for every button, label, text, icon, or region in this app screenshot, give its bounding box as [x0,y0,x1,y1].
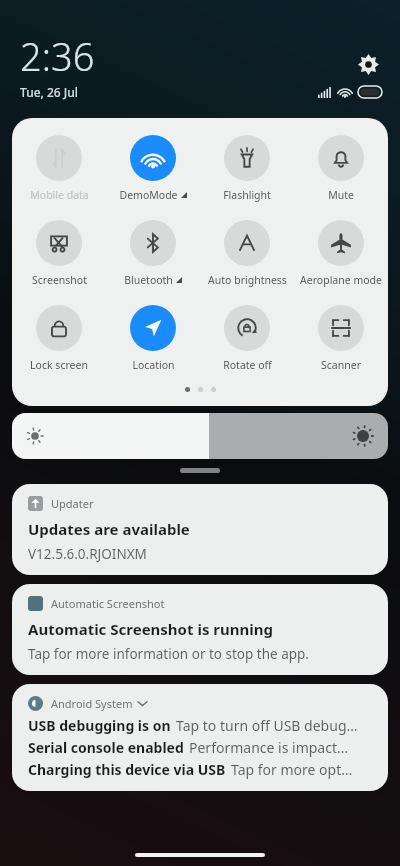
staticText: Location [132,358,175,372]
button[interactable]: Location [106,302,200,375]
staticText: V12.5.6.0.RJOINXM [28,545,147,563]
staticText: Mobile data [30,188,89,202]
button[interactable]: Screenshot [12,217,106,290]
staticText: USB debugging is on [28,716,171,735]
button[interactable]: Mobile data [12,132,106,205]
staticText: Tap for more opt… [231,760,353,779]
button[interactable]: Aeroplane mode [294,217,388,290]
staticText: DemoMode [119,188,178,202]
staticText: Updates are available [28,519,190,539]
button[interactable]: Mute [294,132,388,205]
button[interactable]: Auto brightness [200,217,294,290]
staticText: Tap for more information or to stop the … [28,645,309,663]
staticText: Lock screen [30,358,88,372]
button[interactable]: Lock screen [12,302,106,375]
staticText: Automatic Screenshot [51,596,165,611]
staticText: 2:36 [20,30,95,82]
staticText: Screenshot [32,273,87,287]
staticText: Mute [328,188,354,202]
button[interactable]: Updater [12,484,388,575]
staticText: Tue, 26 Jul [20,84,79,100]
staticText: Bluetooth [124,273,173,287]
button[interactable]: Automatic Screenshot [12,584,388,675]
button[interactable]: Android System [12,684,388,791]
staticText: Aeroplane mode [300,273,382,287]
staticText: Serial console enabled [28,738,184,757]
staticText: Rotate off [223,358,272,372]
button[interactable]: Rotate off [200,302,294,375]
staticText: Tap to turn off USB debug… [176,716,358,735]
staticText: Charging this device via USB [28,760,226,779]
button[interactable]: DemoMode [106,132,200,205]
staticText: Android System [51,696,133,711]
button[interactable]: Flashlight [200,132,294,205]
button[interactable]: Settings [354,50,382,78]
staticText: Performance is impact… [189,738,349,757]
button[interactable]: Brightness [12,413,388,459]
staticText: Scanner [321,358,361,372]
button[interactable]: Scanner [294,302,388,375]
button[interactable]: Bluetooth [106,217,200,290]
staticText: Updater [51,496,94,511]
staticText: Automatic Screenshot is running [28,619,273,639]
staticText: Auto brightness [208,273,287,287]
staticText: Flashlight [223,188,271,202]
